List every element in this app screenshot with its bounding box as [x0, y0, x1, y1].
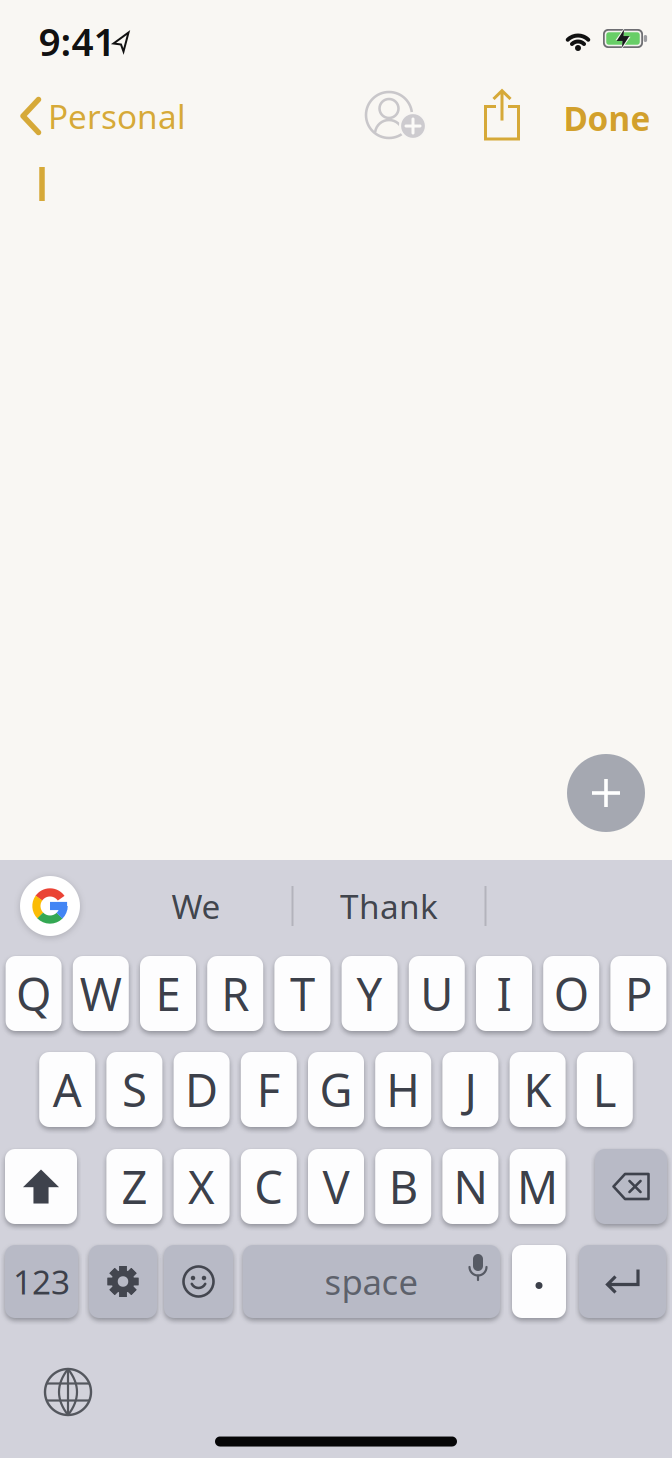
- button[interactable]: New Note: [567, 754, 645, 832]
- staticText: G: [319, 1059, 352, 1120]
- button[interactable]: X: [174, 1149, 230, 1224]
- button[interactable]: Y: [342, 956, 398, 1031]
- staticText: E: [155, 963, 180, 1024]
- button[interactable]: We: [116, 876, 276, 936]
- button[interactable]: Shift: [5, 1149, 77, 1224]
- staticText: U: [420, 963, 453, 1024]
- staticText: D: [185, 1059, 218, 1120]
- button[interactable]: Emoji: [164, 1245, 233, 1318]
- button[interactable]: O: [543, 956, 599, 1031]
- staticText: W: [80, 963, 122, 1024]
- button[interactable]: I: [476, 956, 532, 1031]
- button[interactable]: Z: [106, 1149, 162, 1224]
- button[interactable]: Thank: [309, 876, 469, 936]
- button[interactable]: P: [610, 956, 666, 1031]
- button[interactable]: .: [512, 1245, 566, 1318]
- button[interactable]: G: [308, 1052, 364, 1127]
- staticText: C: [254, 1156, 283, 1217]
- button[interactable]: T: [274, 956, 330, 1031]
- staticText: I: [496, 963, 511, 1024]
- staticText: H: [386, 1059, 420, 1120]
- button[interactable]: H: [375, 1052, 431, 1127]
- button[interactable]: N: [442, 1149, 498, 1224]
- button[interactable]: Next Keyboard: [44, 1368, 92, 1416]
- button[interactable]: U: [409, 956, 465, 1031]
- button[interactable]: Share: [484, 89, 520, 140]
- button[interactable]: V: [308, 1149, 364, 1224]
- staticText: A: [53, 1059, 82, 1120]
- button[interactable]: A: [39, 1052, 95, 1127]
- button[interactable]: F: [241, 1052, 297, 1127]
- button[interactable]: Settings: [89, 1245, 157, 1318]
- button[interactable]: R: [207, 956, 263, 1031]
- button[interactable]: L: [577, 1052, 633, 1127]
- staticText: S: [122, 1059, 147, 1120]
- button[interactable]: space: [243, 1245, 500, 1318]
- button[interactable]: Q: [6, 956, 62, 1031]
- staticText: P: [625, 963, 652, 1024]
- button[interactable]: W: [73, 956, 129, 1031]
- staticText: M: [517, 1156, 558, 1217]
- staticText: space: [324, 1258, 418, 1304]
- staticText: Done: [563, 96, 650, 140]
- button[interactable]: S: [106, 1052, 162, 1127]
- button[interactable]: K: [510, 1052, 566, 1127]
- staticText: R: [221, 963, 249, 1024]
- staticText: Y: [357, 963, 383, 1024]
- staticText: J: [464, 1059, 476, 1120]
- button[interactable]: B: [375, 1149, 431, 1224]
- button[interactable]: C: [241, 1149, 297, 1224]
- button[interactable]: Personal: [20, 91, 196, 141]
- staticText: L: [593, 1059, 617, 1120]
- button[interactable]: Add People: [365, 91, 427, 143]
- staticText: We: [171, 884, 220, 928]
- button[interactable]: Done: [563, 96, 650, 140]
- button[interactable]: E: [140, 956, 196, 1031]
- staticText: 123: [13, 1259, 70, 1304]
- staticText: Z: [121, 1156, 147, 1217]
- staticText: T: [290, 963, 315, 1024]
- button[interactable]: Numbers: [5, 1245, 78, 1318]
- button[interactable]: Return: [579, 1245, 666, 1318]
- staticText: X: [188, 1156, 215, 1217]
- button[interactable]: Google: [20, 876, 80, 936]
- button[interactable]: J: [442, 1052, 498, 1127]
- button[interactable]: D: [174, 1052, 230, 1127]
- staticText: K: [524, 1059, 552, 1120]
- button[interactable]: Delete: [595, 1149, 667, 1224]
- staticText: Personal: [48, 94, 186, 138]
- staticText: Thank: [340, 884, 438, 928]
- staticText: Q: [16, 963, 51, 1024]
- staticText: V: [322, 1156, 349, 1217]
- staticText: F: [257, 1059, 281, 1120]
- button[interactable]: M: [510, 1149, 566, 1224]
- staticText: O: [554, 963, 589, 1024]
- staticText: 9:41: [38, 15, 115, 67]
- staticText: B: [389, 1156, 418, 1217]
- staticText: N: [453, 1156, 487, 1217]
